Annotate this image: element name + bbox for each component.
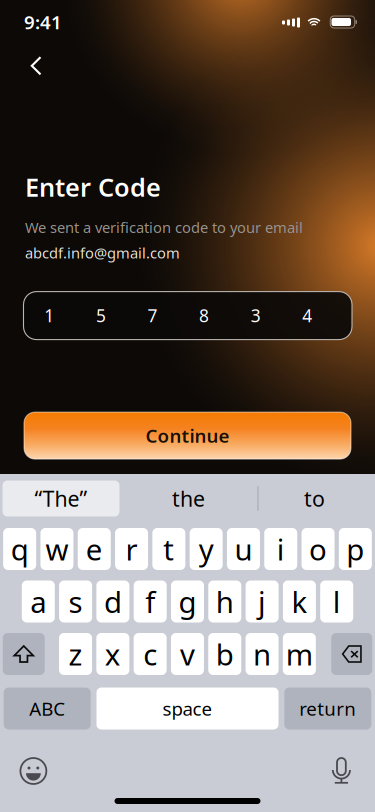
staticText: Continue xyxy=(145,423,229,448)
staticText: k xyxy=(291,582,307,621)
button[interactable]: o xyxy=(302,528,335,570)
button[interactable]: m xyxy=(283,633,316,675)
staticText: ABC xyxy=(29,696,65,721)
button[interactable]: to xyxy=(258,480,370,516)
button[interactable]: t xyxy=(152,528,185,570)
staticText: 9:41 xyxy=(24,10,62,34)
staticText: c xyxy=(143,634,157,673)
button[interactable]: space xyxy=(96,687,278,729)
button[interactable]: Back xyxy=(14,44,58,88)
button[interactable]: u xyxy=(227,528,260,570)
staticText: Enter Code xyxy=(25,170,161,204)
staticText: We sent a verification code to your emai… xyxy=(25,218,303,237)
staticText: g xyxy=(178,582,196,621)
staticText: e xyxy=(86,529,103,568)
button[interactable]: l xyxy=(320,580,353,622)
staticText: 5 xyxy=(96,304,106,327)
button[interactable]: z xyxy=(59,633,92,675)
staticText: p xyxy=(346,529,364,568)
staticText: q xyxy=(11,529,29,568)
staticText: “The” xyxy=(34,484,87,513)
button[interactable]: Delete xyxy=(331,633,372,675)
staticText: v xyxy=(180,634,195,673)
staticText: x xyxy=(105,634,121,673)
button[interactable]: h xyxy=(208,580,241,622)
staticText: b xyxy=(216,634,234,673)
staticText: 1 xyxy=(44,304,54,327)
staticText: space xyxy=(162,696,212,721)
button[interactable]: r xyxy=(115,528,148,570)
button[interactable]: “The” xyxy=(2,480,119,516)
button[interactable]: p xyxy=(339,528,372,570)
staticText: m xyxy=(286,634,313,673)
staticText: return xyxy=(299,696,356,721)
button[interactable]: Shift xyxy=(3,633,45,675)
staticText: i xyxy=(277,529,285,568)
staticText: j xyxy=(258,582,266,621)
button[interactable]: f xyxy=(134,580,167,622)
button[interactable]: k xyxy=(283,580,316,622)
button[interactable]: y xyxy=(190,528,223,570)
button[interactable]: g xyxy=(171,580,204,622)
button[interactable]: Dictation xyxy=(323,753,359,789)
button[interactable]: a xyxy=(22,580,55,622)
staticText: t xyxy=(163,529,174,568)
staticText: f xyxy=(145,582,155,621)
button[interactable]: q xyxy=(3,528,36,570)
button[interactable]: n xyxy=(246,633,279,675)
button[interactable]: j xyxy=(246,580,279,622)
staticText: 7 xyxy=(147,304,157,327)
staticText: 4 xyxy=(302,304,312,327)
button[interactable]: c xyxy=(134,633,167,675)
staticText: r xyxy=(125,529,137,568)
staticText: z xyxy=(68,634,82,673)
button[interactable]: Continue xyxy=(24,412,351,459)
staticText: y xyxy=(199,529,214,568)
staticText: abcdf.info@gmail.com xyxy=(25,243,180,263)
button[interactable]: ABC xyxy=(4,687,91,729)
staticText: a xyxy=(30,582,46,621)
staticText: u xyxy=(234,529,252,568)
staticText: h xyxy=(216,582,234,621)
button[interactable]: Emoji keyboard xyxy=(15,753,51,789)
staticText: s xyxy=(69,582,83,621)
button[interactable]: s xyxy=(59,580,92,622)
button[interactable]: i xyxy=(264,528,297,570)
staticText: to xyxy=(304,484,325,513)
staticText: 3 xyxy=(251,304,261,327)
staticText: l xyxy=(333,582,341,621)
staticText: n xyxy=(253,634,271,673)
button[interactable]: v xyxy=(171,633,204,675)
button[interactable]: the xyxy=(119,480,257,516)
button[interactable]: e xyxy=(78,528,111,570)
staticText: o xyxy=(309,529,327,568)
button[interactable]: return xyxy=(284,687,371,729)
staticText: w xyxy=(45,529,68,568)
staticText: the xyxy=(172,484,205,513)
button[interactable]: x xyxy=(96,633,129,675)
button[interactable]: b xyxy=(208,633,241,675)
staticText: d xyxy=(104,582,122,621)
button[interactable]: d xyxy=(96,580,129,622)
staticText: 8 xyxy=(199,304,209,327)
button[interactable]: w xyxy=(40,528,73,570)
